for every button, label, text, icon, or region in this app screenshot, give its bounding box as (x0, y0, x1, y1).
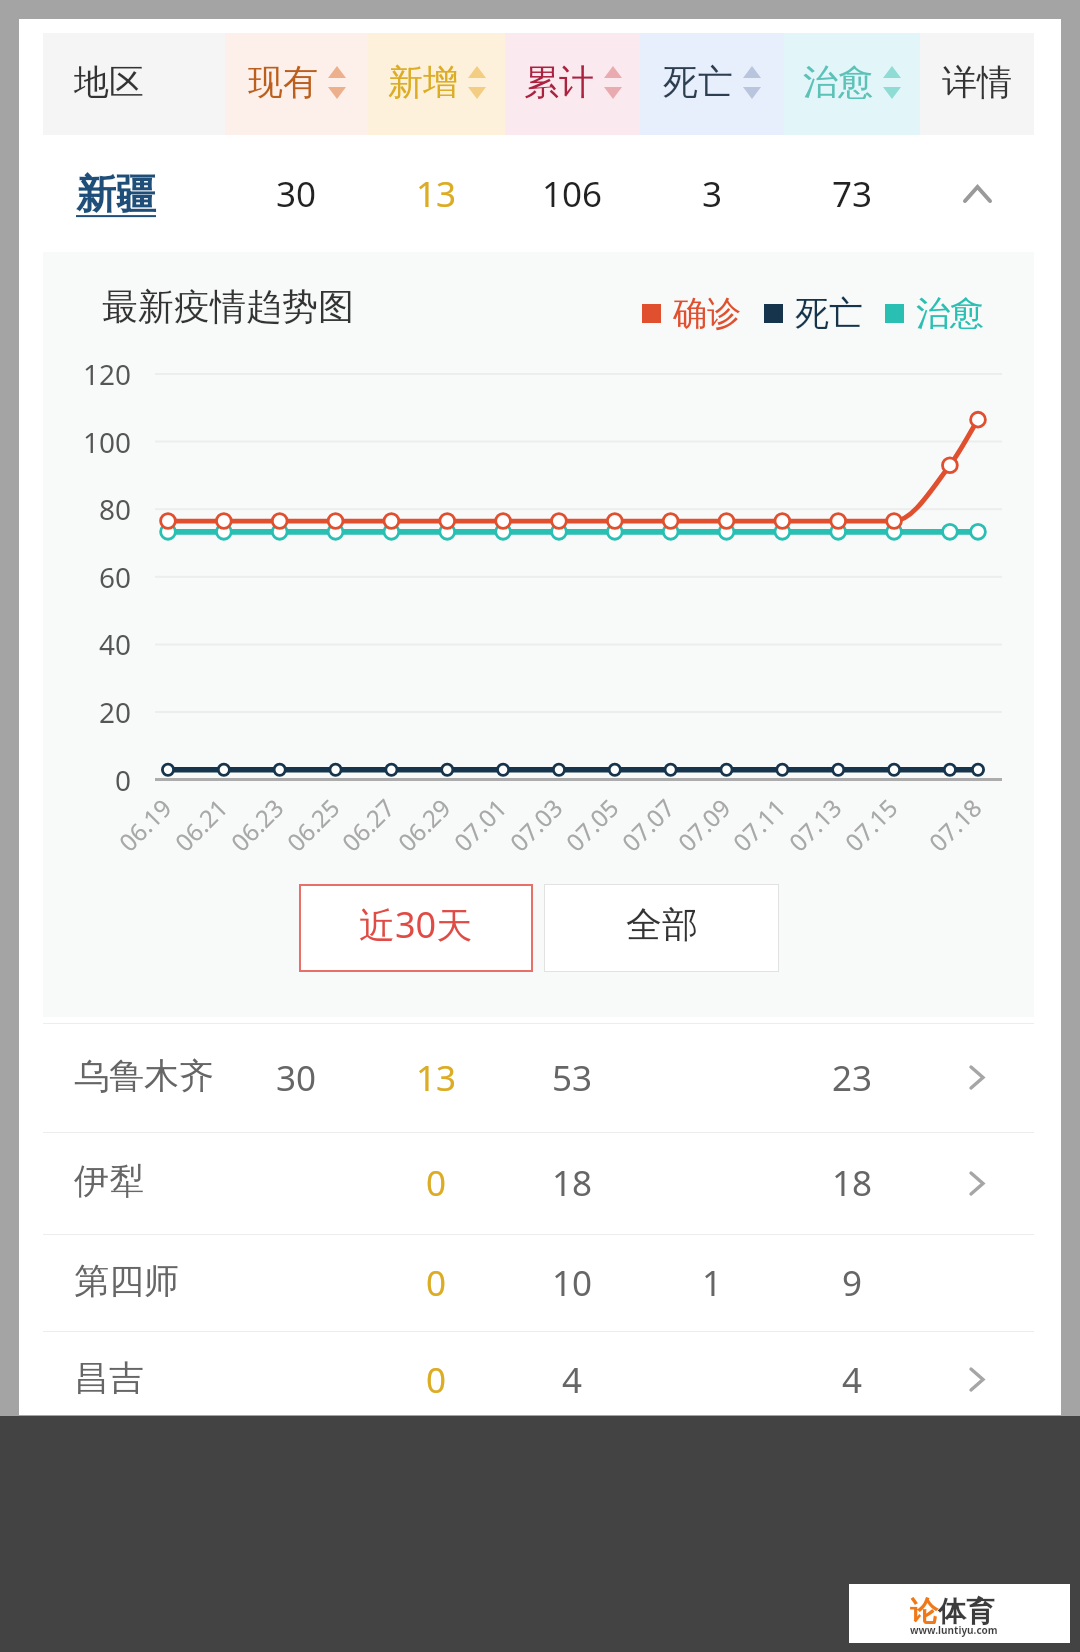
staticText: 新疆 (76, 169, 156, 219)
staticText: 07.03 (502, 791, 570, 858)
staticText: 06.25 (279, 791, 347, 858)
staticText: 07.05 (558, 791, 626, 858)
staticText: 死亡 (663, 60, 733, 104)
staticText: 昌吉 (74, 1356, 144, 1400)
staticText: 80 (99, 490, 132, 528)
button[interactable]: 伊犁 (19, 1132, 1061, 1234)
staticText: 07.07 (614, 791, 682, 858)
staticText: 07.01 (446, 791, 514, 858)
staticText: 18 (832, 1159, 873, 1207)
staticText: 30 (276, 1054, 317, 1102)
button[interactable]: 地区 (43, 33, 225, 135)
staticText: www.luntiyu.com (910, 1623, 998, 1637)
staticText: 18 (552, 1159, 593, 1207)
staticText: 地区 (74, 60, 144, 104)
staticText: 治愈 (803, 60, 873, 104)
staticText: 100 (83, 423, 132, 461)
staticText: 06.29 (390, 791, 458, 858)
staticText: 伊犁 (74, 1159, 144, 1203)
staticText: 第四师 (74, 1259, 179, 1303)
staticText: 体育 (938, 1594, 994, 1629)
staticText: 治愈 (916, 292, 984, 335)
staticText: 0 (426, 1259, 447, 1307)
staticText: 20 (99, 693, 132, 731)
button[interactable]: 详情 (920, 33, 1034, 135)
staticText: 07.18 (921, 791, 989, 858)
button[interactable]: 死亡 (640, 33, 784, 135)
staticText: 近30天 (359, 900, 473, 949)
staticText: 全部 (626, 902, 698, 947)
button[interactable]: 全部 (544, 884, 779, 972)
button[interactable]: 新增 (368, 33, 505, 135)
staticText: 累计 (524, 60, 594, 104)
button[interactable]: 近30天 (299, 884, 533, 972)
button[interactable]: 累计 (505, 33, 640, 135)
button[interactable]: 第四师 (19, 1234, 1061, 1331)
staticText: 论 (910, 1594, 938, 1629)
button[interactable]: 治愈 (784, 33, 920, 135)
staticText: 现有 (248, 60, 318, 104)
button[interactable]: 现有 (225, 33, 368, 135)
other: Open 乌鲁木齐 details (920, 1023, 1034, 1132)
staticText: 06.19 (111, 791, 179, 858)
staticText: 07.11 (725, 791, 793, 858)
staticText: 3 (702, 170, 723, 218)
staticText: 确诊 (673, 292, 741, 335)
staticText: 9 (842, 1259, 863, 1307)
staticText: 4 (562, 1356, 583, 1404)
staticText: 73 (832, 170, 873, 218)
staticText: 13 (416, 1054, 457, 1102)
staticText: 详情 (942, 60, 1012, 104)
staticText: 0 (426, 1159, 447, 1207)
other: Open 伊犁 details (920, 1132, 1034, 1234)
staticText: 06.27 (334, 791, 402, 858)
staticText: 07.09 (670, 791, 738, 858)
staticText: 乌鲁木齐 (74, 1054, 214, 1098)
staticText: 23 (832, 1054, 873, 1102)
staticText: 0 (115, 761, 132, 799)
other: Open 昌吉 details (920, 1331, 1034, 1428)
staticText: 60 (99, 558, 132, 596)
button[interactable]: 昌吉 (19, 1331, 1061, 1428)
staticText: 120 (83, 355, 132, 393)
staticText: 06.23 (223, 791, 291, 858)
staticText: 106 (542, 170, 603, 218)
staticText: 最新疫情趋势图 (102, 284, 354, 329)
staticText: 53 (552, 1054, 593, 1102)
staticText: 07.13 (781, 791, 849, 858)
staticText: 10 (552, 1259, 593, 1307)
staticText: 07.15 (837, 791, 905, 858)
button[interactable]: Collapse trend chart (920, 135, 1034, 252)
button[interactable]: 新疆 (19, 135, 1061, 252)
staticText: 06.21 (167, 791, 235, 858)
staticText: 1 (702, 1259, 723, 1307)
button[interactable]: 乌鲁木齐 (19, 1023, 1061, 1132)
staticText: 30 (276, 170, 317, 218)
staticText: 0 (426, 1356, 447, 1404)
staticText: 40 (99, 625, 132, 663)
staticText: 4 (842, 1356, 863, 1404)
staticText: 13 (416, 170, 457, 218)
staticText: 死亡 (795, 292, 863, 335)
staticText: 新增 (388, 60, 458, 104)
